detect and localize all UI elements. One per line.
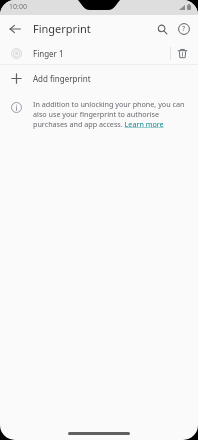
staticText: In addition to unlocking your phone, you… (33, 99, 185, 129)
button[interactable]: Finger 1 (0, 42, 198, 64)
staticText: 10:00 (9, 2, 27, 12)
button[interactable]: Help (173, 18, 195, 40)
button[interactable]: Back (4, 18, 26, 40)
button[interactable]: Delete fingerprint (171, 42, 193, 64)
staticText: ? (182, 24, 186, 34)
staticText: Add fingerprint (33, 73, 91, 84)
staticText: Finger 1 (33, 48, 64, 59)
staticText: Fingerprint (33, 21, 91, 36)
button[interactable]: Search (151, 18, 173, 40)
button[interactable]: Add fingerprint (0, 65, 198, 92)
